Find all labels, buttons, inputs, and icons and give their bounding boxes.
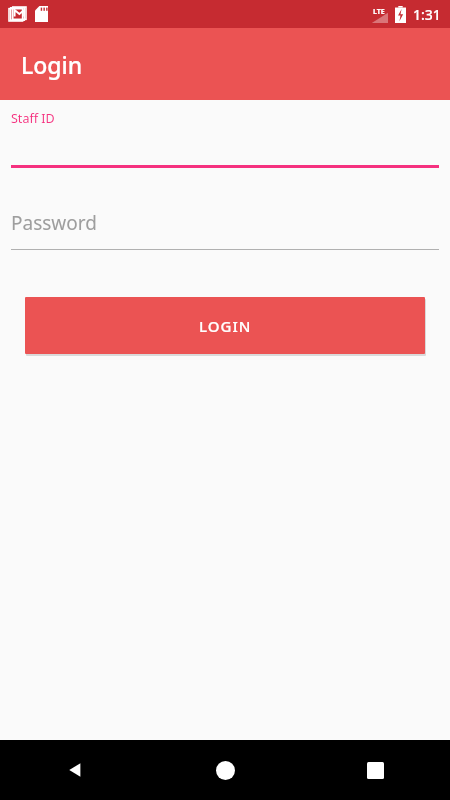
staticText: Password	[11, 210, 97, 236]
button[interactable]: LOGIN	[25, 297, 425, 354]
staticText: Staff ID	[11, 110, 55, 127]
staticText: 1:31	[413, 5, 441, 24]
staticText: LTE	[373, 7, 385, 17]
button[interactable]: Staff ID	[0, 106, 450, 168]
staticText: LOGIN	[199, 316, 252, 336]
button[interactable]: Recent apps	[300, 740, 450, 800]
staticText: Login	[21, 49, 83, 80]
button[interactable]: Home	[150, 740, 300, 800]
button[interactable]: Back	[0, 740, 150, 800]
button[interactable]: Password	[0, 210, 450, 250]
